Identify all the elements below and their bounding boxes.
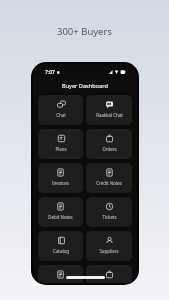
button[interactable]: Tickets bbox=[86, 197, 132, 227]
button[interactable]: Orders bbox=[86, 129, 132, 159]
button[interactable]: Invoices bbox=[38, 163, 83, 193]
staticText: Invoices bbox=[52, 180, 69, 186]
button[interactable]: Suppliers bbox=[86, 231, 132, 261]
staticText: Debit Notes bbox=[48, 214, 73, 220]
staticText: 300+ Buyers bbox=[57, 25, 112, 38]
staticText: Catalog bbox=[53, 248, 69, 254]
staticText: Suppliers bbox=[99, 248, 119, 254]
staticText: Chat bbox=[56, 112, 66, 118]
button[interactable]: Raakkal Chat bbox=[86, 95, 132, 125]
button[interactable]: Credit Notes bbox=[86, 163, 132, 193]
button[interactable]: Reports bbox=[38, 265, 83, 283]
staticText: Credit Notes bbox=[96, 180, 122, 186]
button[interactable]: Payments bbox=[86, 265, 132, 283]
button[interactable]: Catalog bbox=[38, 231, 83, 261]
staticText: Buyer Dashboard bbox=[62, 82, 108, 90]
staticText: Orders bbox=[102, 146, 117, 152]
staticText: 7:07 bbox=[45, 69, 55, 76]
staticText: Raakkal Chat bbox=[96, 112, 123, 118]
staticText: Plans bbox=[55, 146, 67, 152]
button[interactable]: Chat bbox=[38, 95, 83, 125]
button[interactable]: Debit Notes bbox=[38, 197, 83, 227]
button[interactable]: Plans bbox=[38, 129, 83, 159]
staticText: Tickets bbox=[102, 214, 117, 220]
